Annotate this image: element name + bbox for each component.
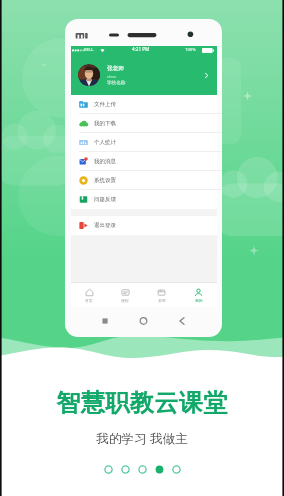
button[interactable]: 退出登录 (71, 216, 217, 235)
staticText: 我的下载 (94, 120, 116, 127)
button[interactable]: 我的下载 (71, 114, 217, 133)
button[interactable]: 首页 (71, 283, 107, 307)
staticText: 课程 (121, 298, 129, 303)
staticText: 张老师 (107, 65, 124, 72)
button[interactable]: 资源 (143, 283, 180, 307)
button[interactable]: 我的 (180, 283, 217, 307)
staticText: zhsm (107, 74, 116, 79)
button[interactable]: 系统设置 (71, 171, 217, 190)
button[interactable]: 个人统计 (71, 133, 217, 152)
staticText: 我的 (195, 298, 203, 303)
staticText: BELL (84, 47, 94, 53)
staticText: 系统设置 (94, 177, 116, 184)
button[interactable]: 张老师 (71, 55, 217, 95)
staticText: 退出登录 (94, 222, 116, 229)
staticText: 问题反馈 (94, 196, 116, 203)
button[interactable]: 问题反馈 (71, 190, 217, 209)
staticText: 我的学习 我做主 (0, 430, 284, 447)
other: Profile details (202, 71, 211, 80)
staticText: 资源 (158, 298, 166, 303)
staticText: 文件上传 (94, 101, 116, 108)
button[interactable]: 文件上传 (71, 95, 217, 114)
button[interactable]: 课程 (107, 283, 143, 307)
button[interactable]: 我的消息 (71, 152, 217, 171)
staticText: 智慧职教云课堂 (0, 388, 284, 418)
staticText: 学校名称 (107, 80, 126, 86)
staticText: 首页 (85, 298, 93, 303)
staticText: 100% (185, 47, 196, 53)
staticText: 4:21 PM (132, 46, 150, 52)
staticText: 个人统计 (94, 139, 116, 146)
staticText: 我的消息 (94, 158, 116, 165)
